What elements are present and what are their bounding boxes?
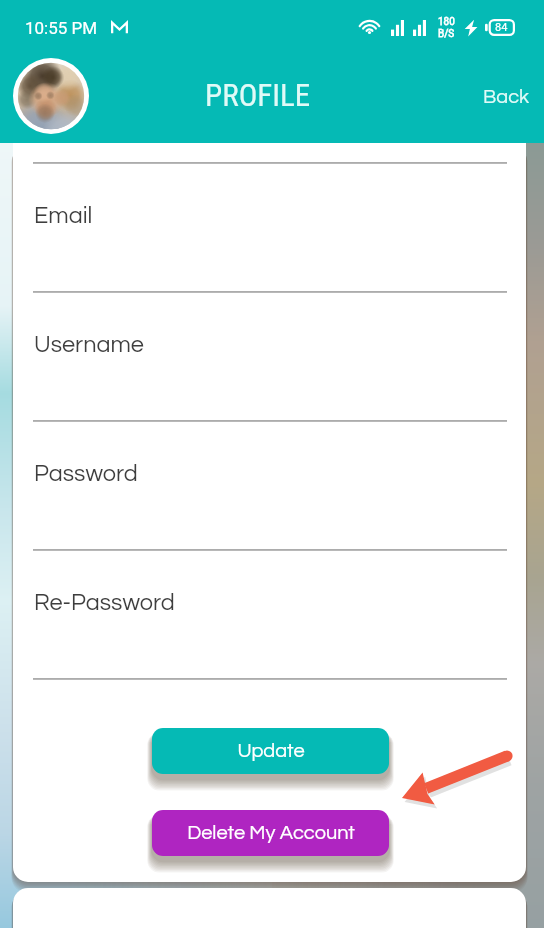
button[interactable]: Update (152, 728, 389, 774)
button[interactable]: Profile photo (13, 58, 89, 134)
staticText: Update (237, 741, 305, 762)
staticText: Back (483, 87, 530, 108)
staticText: Delete My Account (187, 823, 355, 844)
staticText: 84 (495, 21, 508, 34)
staticText: 10:55 PM (25, 18, 98, 38)
staticText: 180 (438, 16, 455, 28)
button[interactable]: Delete My Account (152, 810, 389, 856)
staticText: B/S (438, 28, 455, 40)
staticText: Password (34, 462, 138, 486)
staticText: Re-Password (34, 591, 175, 615)
staticText: Email (34, 204, 93, 228)
button[interactable]: Back (483, 87, 530, 108)
staticText: Username (34, 333, 144, 357)
staticText: PROFILE (205, 77, 311, 113)
